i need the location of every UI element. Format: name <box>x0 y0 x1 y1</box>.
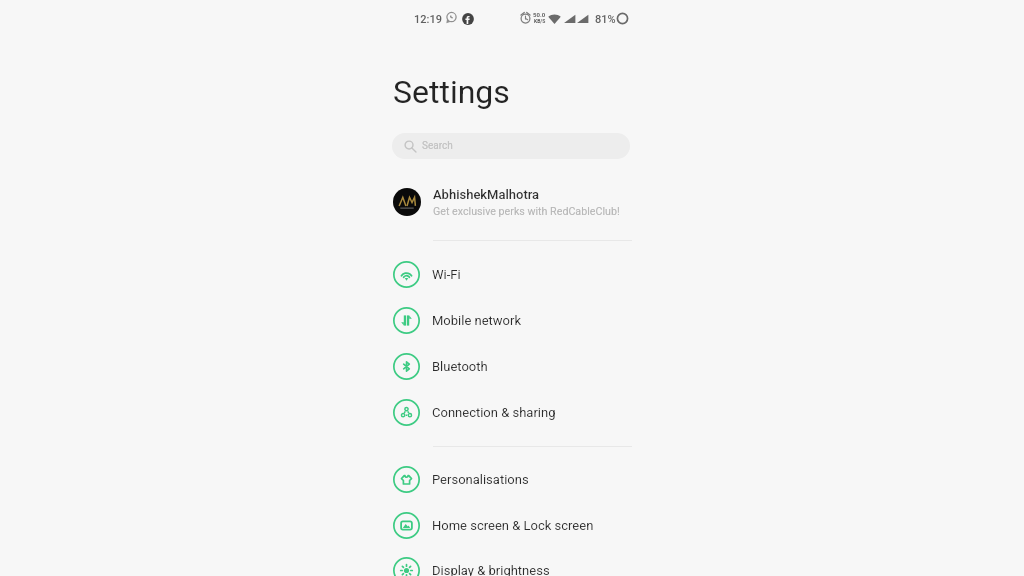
button[interactable]: Search <box>392 133 630 159</box>
staticText: Wi-Fi <box>432 267 461 282</box>
staticText: Connection & sharing <box>432 405 556 420</box>
staticText: Mobile network <box>432 313 522 328</box>
staticText: Get exclusive perks with RedCableClub! <box>433 205 620 218</box>
button[interactable]: Personalisations <box>393 456 632 502</box>
staticText: 81% <box>595 13 616 26</box>
staticText: AbhishekMalhotra <box>433 187 540 202</box>
staticText: KB/S <box>534 18 546 24</box>
button[interactable]: Display & brightness <box>393 547 632 576</box>
staticText: Settings <box>393 73 510 111</box>
button[interactable]: AbhishekMalhotra <box>393 184 632 220</box>
button[interactable]: Home screen & Lock screen <box>393 502 632 548</box>
button[interactable]: Wi-Fi <box>393 251 632 297</box>
staticText: 12:19 <box>414 13 442 26</box>
staticText: Bluetooth <box>432 359 488 374</box>
button[interactable]: Bluetooth <box>393 343 632 389</box>
button[interactable]: Connection & sharing <box>393 389 632 435</box>
staticText: Home screen & Lock screen <box>432 518 594 533</box>
staticText: 50.0 <box>533 11 546 18</box>
staticText: Personalisations <box>432 472 529 487</box>
staticText: Search <box>422 140 453 152</box>
button[interactable]: Mobile network <box>393 297 632 343</box>
staticText: Display & brightness <box>432 563 550 576</box>
